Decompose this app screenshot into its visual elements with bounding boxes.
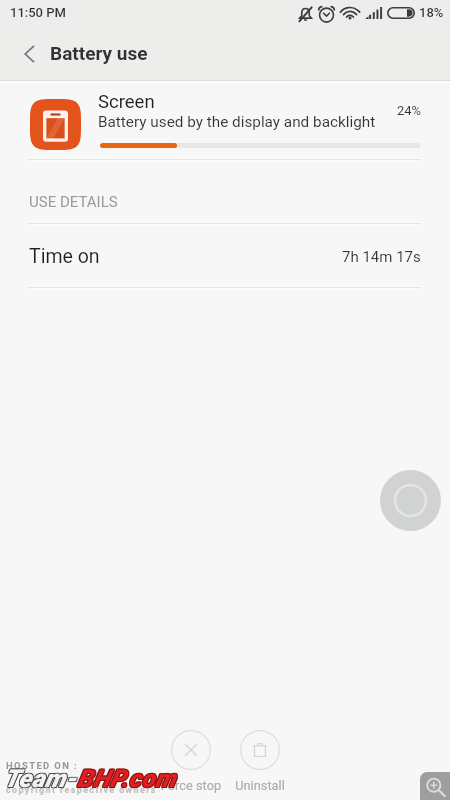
button[interactable]: Force stop xyxy=(136,726,246,796)
staticText: Uninstall xyxy=(205,778,315,793)
staticText: Team- xyxy=(5,763,78,792)
staticText: Time on xyxy=(29,245,100,268)
button[interactable]: Floating ball xyxy=(380,470,441,531)
staticText: Team- xyxy=(3,765,76,794)
staticText: Team- xyxy=(3,763,76,792)
staticText: BHP.com xyxy=(76,764,175,793)
staticText: BHP.com xyxy=(78,763,177,792)
staticText: Battery used by the display and backligh… xyxy=(98,113,376,131)
staticText: Team- xyxy=(5,765,78,794)
staticText: BHP.com xyxy=(78,764,177,793)
staticText: HOSTED ON : xyxy=(6,760,79,771)
staticText: Team- xyxy=(4,764,77,793)
staticText: Team- xyxy=(4,765,77,794)
button[interactable]: Time on xyxy=(0,224,450,287)
staticText: BHP.com xyxy=(77,763,176,792)
staticText: BHP.com xyxy=(77,764,176,793)
staticText: 24% xyxy=(397,103,422,118)
staticText: BHP.com xyxy=(76,763,175,792)
button[interactable]: Uninstall xyxy=(205,726,315,796)
staticText: BHP.com xyxy=(77,765,176,794)
staticText: 11:50 PM xyxy=(10,5,66,20)
staticText: Team- xyxy=(5,764,78,793)
staticText: USE DETAILS xyxy=(29,193,118,211)
staticText: Screen xyxy=(98,91,155,113)
staticText: Force stop xyxy=(136,778,246,793)
staticText: Battery use xyxy=(50,42,148,64)
staticText: Team- xyxy=(3,764,76,793)
staticText: Team- xyxy=(4,763,77,792)
staticText: BHP.com xyxy=(78,765,177,794)
button[interactable]: Zoom in xyxy=(420,772,450,800)
button[interactable]: Back xyxy=(8,32,52,76)
staticText: copyright respective owners xyxy=(6,785,157,796)
staticText: 7h 14m 17s xyxy=(342,248,421,266)
staticText: 18% xyxy=(419,5,444,20)
staticText: BHP.com xyxy=(76,765,175,794)
